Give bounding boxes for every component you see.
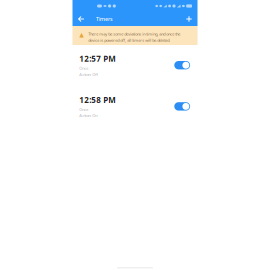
staticText: There may be some deviations in timing, … <box>88 31 180 37</box>
staticText: device is powered off, all timers will b… <box>88 38 170 43</box>
button[interactable]: Back <box>72 12 90 26</box>
button[interactable]: 12:58 PM <box>72 91 197 121</box>
staticText: 12:57 PM <box>79 53 116 64</box>
staticText: Action: On <box>79 113 97 118</box>
staticText: Once <box>79 107 88 112</box>
staticText: Once <box>79 66 88 71</box>
button[interactable]: Add timer <box>180 12 197 26</box>
staticText: 12:58 PM <box>79 95 116 105</box>
staticText: Timers <box>96 15 113 23</box>
staticText: Action: Off <box>79 72 98 77</box>
button[interactable]: 12:57 PM <box>72 50 197 80</box>
